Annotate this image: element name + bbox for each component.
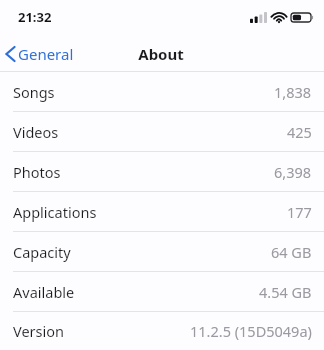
button[interactable]: Applications (0, 192, 324, 231)
staticText: 177 (287, 202, 312, 222)
other: Cellular signal (250, 12, 267, 23)
staticText: Capacity (13, 242, 71, 262)
staticText: General (18, 44, 74, 64)
button[interactable]: Available (0, 272, 324, 311)
staticText: 4.54 GB (259, 282, 312, 302)
staticText: Photos (13, 162, 61, 182)
button[interactable]: Capacity (0, 232, 324, 271)
button[interactable]: Songs (0, 72, 324, 111)
button[interactable]: Back (0, 40, 82, 68)
staticText: 6,398 (274, 162, 312, 182)
staticText: 11.2.5 (15D5049a) (190, 321, 312, 341)
staticText: Available (13, 282, 75, 302)
other: Wi-Fi (272, 12, 286, 23)
staticText: Applications (13, 202, 97, 222)
button[interactable]: Version (0, 312, 324, 350)
button[interactable]: Videos (0, 112, 324, 151)
other: Battery (291, 12, 314, 23)
staticText: 64 GB (271, 242, 312, 262)
staticText: 1,838 (274, 82, 312, 102)
other: Back (6, 46, 15, 62)
staticText: 425 (287, 122, 312, 142)
staticText: Videos (13, 122, 59, 142)
button[interactable]: Photos (0, 152, 324, 191)
staticText: Songs (13, 82, 55, 102)
staticText: About (138, 44, 184, 64)
staticText: 21:32 (18, 8, 52, 26)
staticText: Version (13, 321, 64, 341)
